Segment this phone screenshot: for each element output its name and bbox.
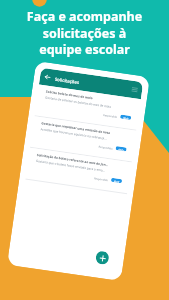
staticText: Respondido [103,113,117,118]
button[interactable]: Abrir [111,178,122,183]
staticText: Abrir [114,179,120,183]
button[interactable]: Abrir [120,114,131,120]
staticText: Respondido [98,145,113,150]
staticText: Solicitações [54,76,80,85]
button[interactable]: Filtrar [131,86,139,94]
staticText: Faça e acompanhe solicitações à equipe e… [0,8,169,57]
staticText: Abrir [123,116,129,120]
staticText: Solicitação de boleto referente ao mes d… [37,153,109,167]
button[interactable]: Gostaria que requisitar uma emissão de n… [30,116,136,162]
staticText: Solicito boleto do mes de maio [46,90,94,100]
button[interactable]: Abrir [115,146,127,152]
staticText: Respondido [94,176,108,181]
staticText: Gostaria que requisitar uma emissão de n… [41,121,111,135]
staticText: Abrir [118,147,125,151]
button[interactable]: Solicitação de boleto referente ao mes d… [25,148,132,194]
staticText: Gostaria de solicitar os boletos do mes … [45,95,112,109]
button[interactable]: Solicito boleto do mes de maio [34,84,141,131]
staticText: Acredito que houve um equívoco na cobran… [40,127,107,141]
staticText: Gostaria que o boleto fosse enviado para… [36,159,106,173]
button[interactable]: Nova solicitação [95,250,110,265]
button[interactable]: Voltar [44,73,51,81]
